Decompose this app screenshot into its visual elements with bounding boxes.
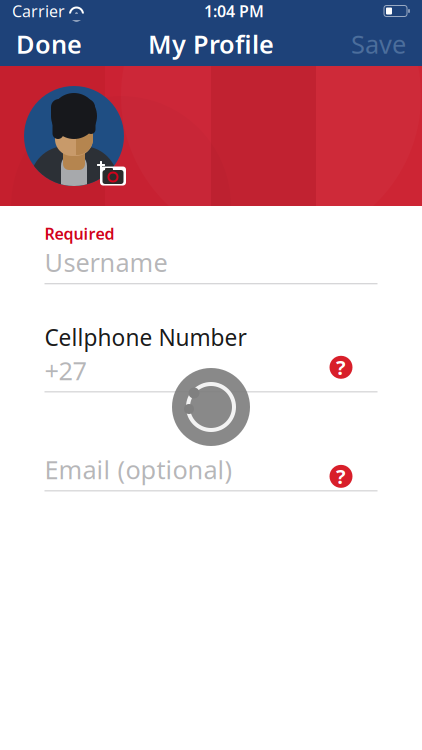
staticText: My Profile: [148, 27, 274, 61]
staticText: Done: [16, 27, 82, 61]
button[interactable]: Done: [0, 22, 98, 66]
staticText: Username: [44, 245, 167, 279]
staticText: Cellphone Number: [44, 322, 246, 352]
staticText: Email (optional): [44, 452, 232, 486]
button[interactable]: Change profile photo: [18, 81, 130, 191]
staticText: Carrier: [12, 0, 65, 22]
button[interactable]: Help: [329, 356, 352, 379]
staticText: Required: [44, 223, 114, 244]
staticText: +27: [44, 353, 86, 387]
button[interactable]: Help: [329, 465, 352, 488]
staticText: ?: [336, 463, 346, 490]
staticText: Save: [351, 27, 406, 61]
button[interactable]: Save: [335, 22, 422, 66]
staticText: 1:04 PM: [204, 0, 264, 22]
staticText: ?: [336, 354, 346, 381]
